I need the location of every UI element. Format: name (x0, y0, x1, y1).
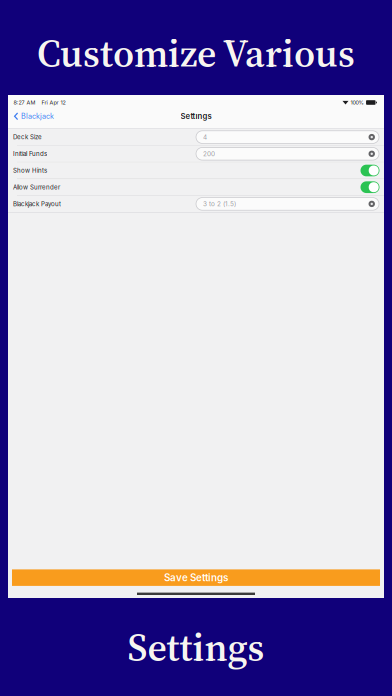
staticText: Deck Size (13, 133, 42, 141)
staticText: Allow Surrender (13, 183, 60, 191)
staticText: 200 (203, 150, 215, 158)
staticText: 100% (350, 99, 363, 106)
staticText: Save Settings (164, 572, 228, 584)
staticText: 3 to 2 (1.5) (203, 200, 236, 208)
button[interactable]: Save Settings (12, 569, 380, 586)
staticText: Customize Various (37, 26, 355, 79)
staticText: Fri Apr 12 (41, 99, 65, 106)
button[interactable]: Allow Surrender (8, 179, 384, 195)
button[interactable]: Deck Size (8, 129, 384, 145)
staticText: Blackjack Payout (13, 200, 61, 208)
button[interactable]: Show Hints (8, 162, 384, 179)
button[interactable]: Blackjack Payout (8, 196, 384, 212)
button[interactable]: Initial Funds (8, 146, 384, 162)
staticText: 8:27 AM (13, 99, 35, 106)
staticText: Blackjack (21, 112, 54, 121)
staticText: Settings (127, 620, 264, 673)
staticText: Settings (180, 112, 211, 121)
staticText: 4 (203, 133, 207, 141)
staticText: Initial Funds (13, 150, 47, 157)
button[interactable]: Blackjack (8, 108, 60, 128)
staticText: Show Hints (13, 167, 47, 174)
